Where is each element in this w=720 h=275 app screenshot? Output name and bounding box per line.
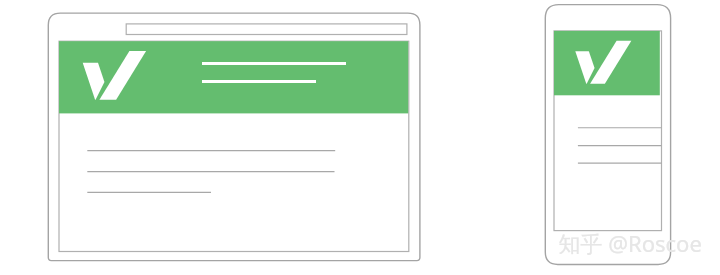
button[interactable]: Desktop browser preview	[47, 12, 422, 263]
button[interactable]: Mobile phone preview	[544, 3, 672, 266]
